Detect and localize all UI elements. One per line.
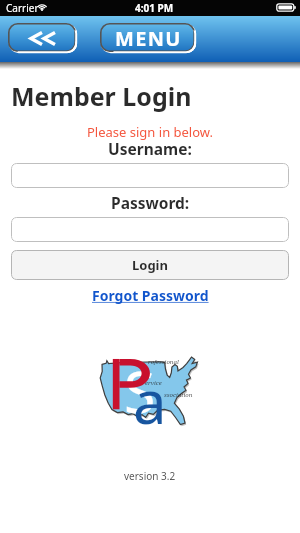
button[interactable]: MENU [100,23,196,53]
staticText: Member Login [11,79,192,113]
button[interactable]: Back [8,23,77,53]
staticText: Login [132,256,168,274]
staticText: Password: [111,192,190,213]
staticText: Username: [108,138,192,159]
staticText: ssociation [164,391,193,399]
staticText: version 3.2 [124,469,176,483]
staticText: 4:01 PM [135,1,174,15]
staticText: rofessional [148,358,179,366]
button[interactable] [11,163,289,188]
staticText: S [124,352,156,428]
staticText: Carrier [6,1,39,15]
staticText: Please sign in below. [87,123,214,141]
staticText: a [133,360,167,436]
button[interactable]: Login [11,250,289,280]
button[interactable] [11,217,289,242]
staticText: ervice [145,379,162,387]
button[interactable]: Forgot Password [92,286,209,305]
staticText: MENU [115,25,182,52]
